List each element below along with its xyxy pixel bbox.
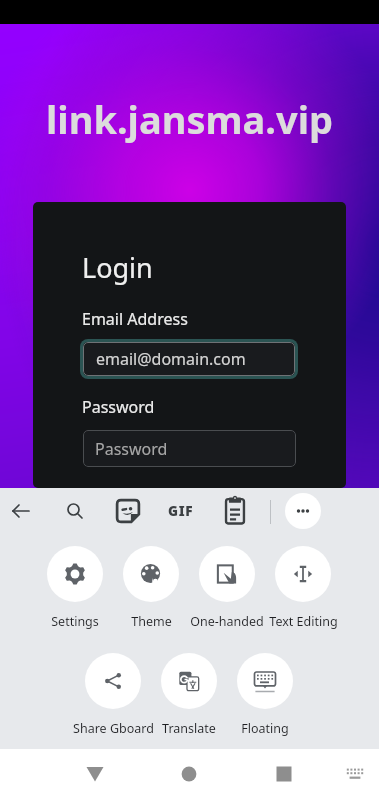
staticText: Password — [82, 396, 155, 418]
button[interactable]: Search — [59, 495, 91, 527]
staticText: Text Editing — [269, 613, 338, 630]
staticText: GIF — [168, 502, 194, 520]
staticText: Theme — [131, 613, 172, 630]
button[interactable]: Settings — [25, 546, 125, 626]
button[interactable]: email@domain.com — [83, 342, 295, 376]
button[interactable]: GIF — [165, 495, 197, 527]
button[interactable]: More options — [285, 493, 321, 529]
button[interactable]: Back — [79, 758, 111, 790]
button[interactable]: Back — [5, 495, 37, 527]
staticText: Password — [95, 438, 168, 460]
staticText: Settings — [51, 613, 99, 630]
staticText: Email Address — [82, 308, 188, 330]
button[interactable]: Stickers — [112, 495, 144, 527]
button[interactable]: One-handed — [177, 546, 277, 626]
button[interactable]: Home — [173, 758, 205, 790]
button[interactable]: Password — [83, 430, 296, 467]
button[interactable]: Recents — [268, 758, 300, 790]
staticText: Floating — [241, 720, 289, 737]
staticText: One-handed — [190, 613, 264, 630]
staticText: email@domain.com — [96, 348, 246, 370]
staticText: Translate — [162, 720, 216, 737]
button[interactable]: Translate — [139, 653, 239, 733]
staticText: Login — [82, 249, 153, 286]
button[interactable]: Text Editing — [253, 546, 353, 626]
staticText: link.jansma.vip — [46, 93, 334, 145]
button[interactable]: Switch keyboard — [339, 758, 371, 790]
staticText: Share Gboard — [73, 720, 154, 737]
button[interactable]: Share Gboard — [63, 653, 163, 733]
button[interactable]: Theme — [101, 546, 201, 626]
button[interactable]: Floating — [215, 653, 315, 733]
button[interactable]: Clipboard — [219, 495, 251, 527]
